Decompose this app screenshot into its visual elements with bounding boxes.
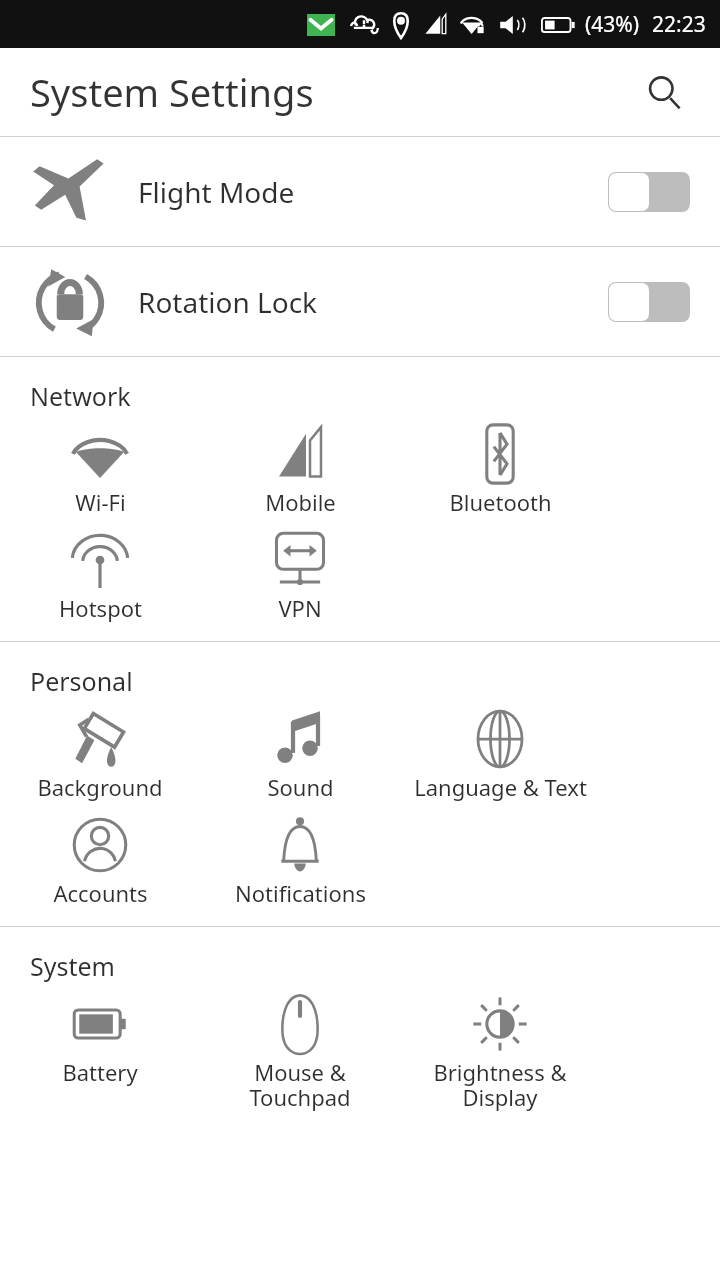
button[interactable]: Language & Text [400, 702, 600, 808]
button[interactable]: VPN [200, 523, 400, 629]
staticText: Bluetooth [449, 487, 552, 517]
staticText: Battery [62, 1057, 138, 1087]
button[interactable]: Rotation Lock [0, 247, 720, 356]
button[interactable]: Background [0, 702, 200, 808]
staticText: Sound [267, 772, 334, 802]
button[interactable]: Mouse & Touchpad [200, 987, 400, 1119]
button[interactable]: Toggle [608, 172, 690, 212]
staticText: Accounts [53, 878, 148, 908]
button[interactable]: Bluetooth [400, 417, 600, 523]
staticText: Hotspot [59, 593, 142, 623]
staticText: VPN [278, 593, 322, 623]
button[interactable]: Toggle [608, 282, 690, 322]
button[interactable]: Mobile [200, 417, 400, 523]
staticText: 22:23 [652, 10, 706, 39]
staticText: Personal [30, 664, 133, 698]
staticText: System Settings [30, 66, 314, 118]
button[interactable]: Sound [200, 702, 400, 808]
staticText: Mobile [265, 487, 336, 517]
staticText: Flight Mode [138, 173, 295, 211]
staticText: (43%) [585, 10, 640, 39]
staticText: System [30, 949, 115, 983]
button[interactable]: Notifications [200, 808, 400, 914]
staticText: Rotation Lock [138, 283, 318, 321]
staticText: Mouse & Touchpad [249, 1057, 351, 1113]
staticText: Network [30, 379, 131, 413]
staticText: Background [37, 772, 163, 802]
button[interactable]: Search [636, 64, 692, 120]
staticText: Brightness & Display [433, 1057, 567, 1113]
staticText: Language & Text [414, 772, 587, 802]
button[interactable]: Hotspot [0, 523, 200, 629]
button[interactable]: Flight Mode [0, 137, 720, 246]
button[interactable]: Brightness & Display [400, 987, 600, 1119]
button[interactable]: Accounts [0, 808, 200, 914]
staticText: Notifications [235, 878, 366, 908]
button[interactable]: Battery [0, 987, 200, 1093]
staticText: Wi-Fi [75, 487, 126, 517]
button[interactable]: Wi-Fi [0, 417, 200, 523]
